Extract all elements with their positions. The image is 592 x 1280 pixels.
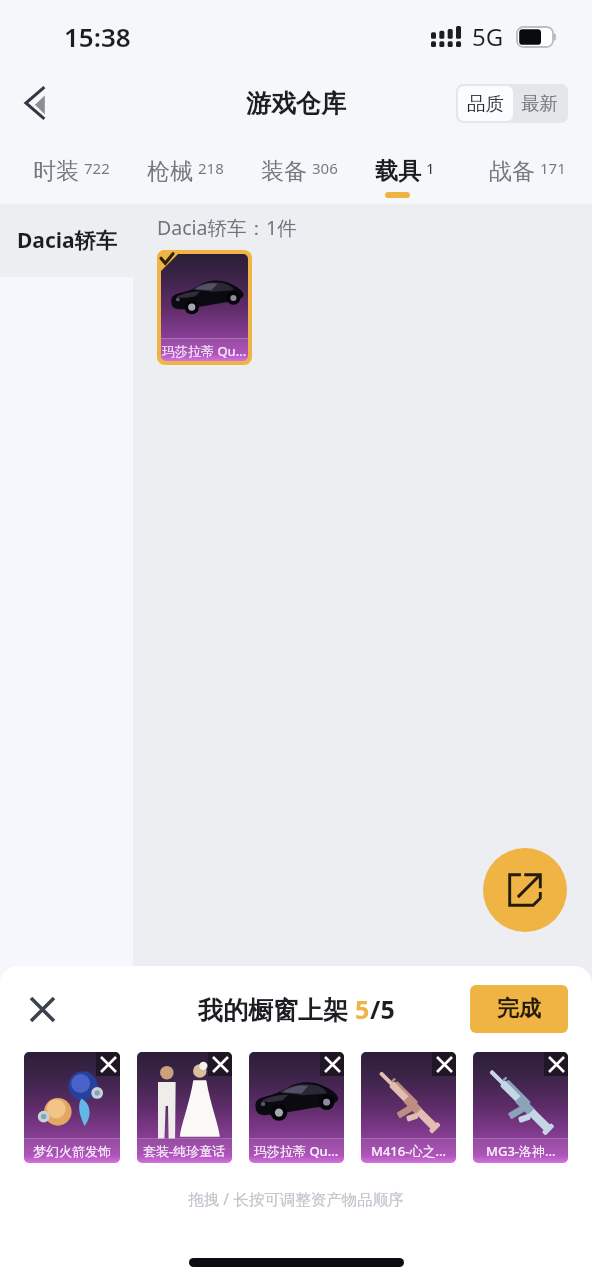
button[interactable]: Remove — [544, 1052, 568, 1076]
staticText: 装备 — [261, 157, 307, 186]
staticText: 拖拽 / 长按可调整资产物品顺序 — [0, 1188, 592, 1209]
staticText: 玛莎拉蒂 Qu… — [162, 342, 247, 360]
staticText: 梦幻火箭发饰 — [33, 1143, 111, 1159]
button[interactable]: Remove — [96, 1052, 120, 1076]
staticText: 最新 — [521, 92, 558, 115]
staticText: /5 — [370, 992, 395, 1026]
staticText: 载具 — [375, 157, 421, 186]
button[interactable]: Share — [483, 848, 567, 932]
button[interactable]: 装备 — [228, 134, 342, 204]
staticText: Dacia轿车：1件 — [157, 214, 297, 241]
button[interactable]: 载具 — [342, 134, 456, 204]
button[interactable]: Remove — [320, 1052, 344, 1076]
button[interactable]: 玛莎拉蒂 Qu… — [249, 1052, 344, 1163]
staticText: 枪械 — [147, 157, 193, 186]
button[interactable]: 最新 — [513, 86, 566, 121]
button[interactable]: M416-心之… — [361, 1052, 456, 1163]
staticText: 套装-纯珍童话 — [143, 1142, 226, 1160]
staticText: 游戏仓库 — [246, 88, 346, 119]
staticText: 722 — [84, 158, 110, 178]
staticText: 1 — [426, 158, 435, 178]
staticText: 我的橱窗上架 — [198, 992, 355, 1026]
button[interactable]: 品质 — [458, 86, 513, 121]
staticText: 战备 — [489, 157, 535, 186]
button[interactable]: 玛莎拉蒂 Qu… — [157, 250, 252, 365]
button[interactable]: Close — [16, 983, 68, 1035]
staticText: 时装 — [33, 157, 79, 186]
button[interactable]: 枪械 — [114, 134, 228, 204]
staticText: MG3-洛神… — [486, 1142, 556, 1160]
button[interactable]: Dacia轿车 — [0, 204, 133, 277]
button[interactable]: 梦幻火箭发饰 — [24, 1052, 120, 1163]
staticText: 171 — [540, 158, 566, 178]
staticText: Dacia轿车 — [17, 226, 117, 255]
button[interactable]: MG3-洛神… — [473, 1052, 568, 1163]
button[interactable]: Remove — [208, 1052, 232, 1076]
button[interactable]: Back — [7, 76, 61, 130]
button[interactable]: 战备 — [456, 134, 570, 204]
staticText: 5G — [472, 20, 504, 53]
button[interactable]: 时装 — [0, 134, 114, 204]
staticText: 5 — [355, 992, 370, 1026]
staticText: 218 — [198, 158, 224, 178]
button[interactable]: 套装-纯珍童话 — [137, 1052, 232, 1163]
staticText: 品质 — [467, 92, 504, 115]
staticText: 15:38 — [64, 19, 131, 54]
button[interactable]: 完成 — [470, 985, 568, 1033]
staticText: M416-心之… — [371, 1142, 446, 1160]
staticText: 完成 — [497, 995, 541, 1023]
staticText: 306 — [312, 158, 338, 178]
staticText: 玛莎拉蒂 Qu… — [254, 1142, 339, 1160]
button[interactable]: Remove — [432, 1052, 456, 1076]
